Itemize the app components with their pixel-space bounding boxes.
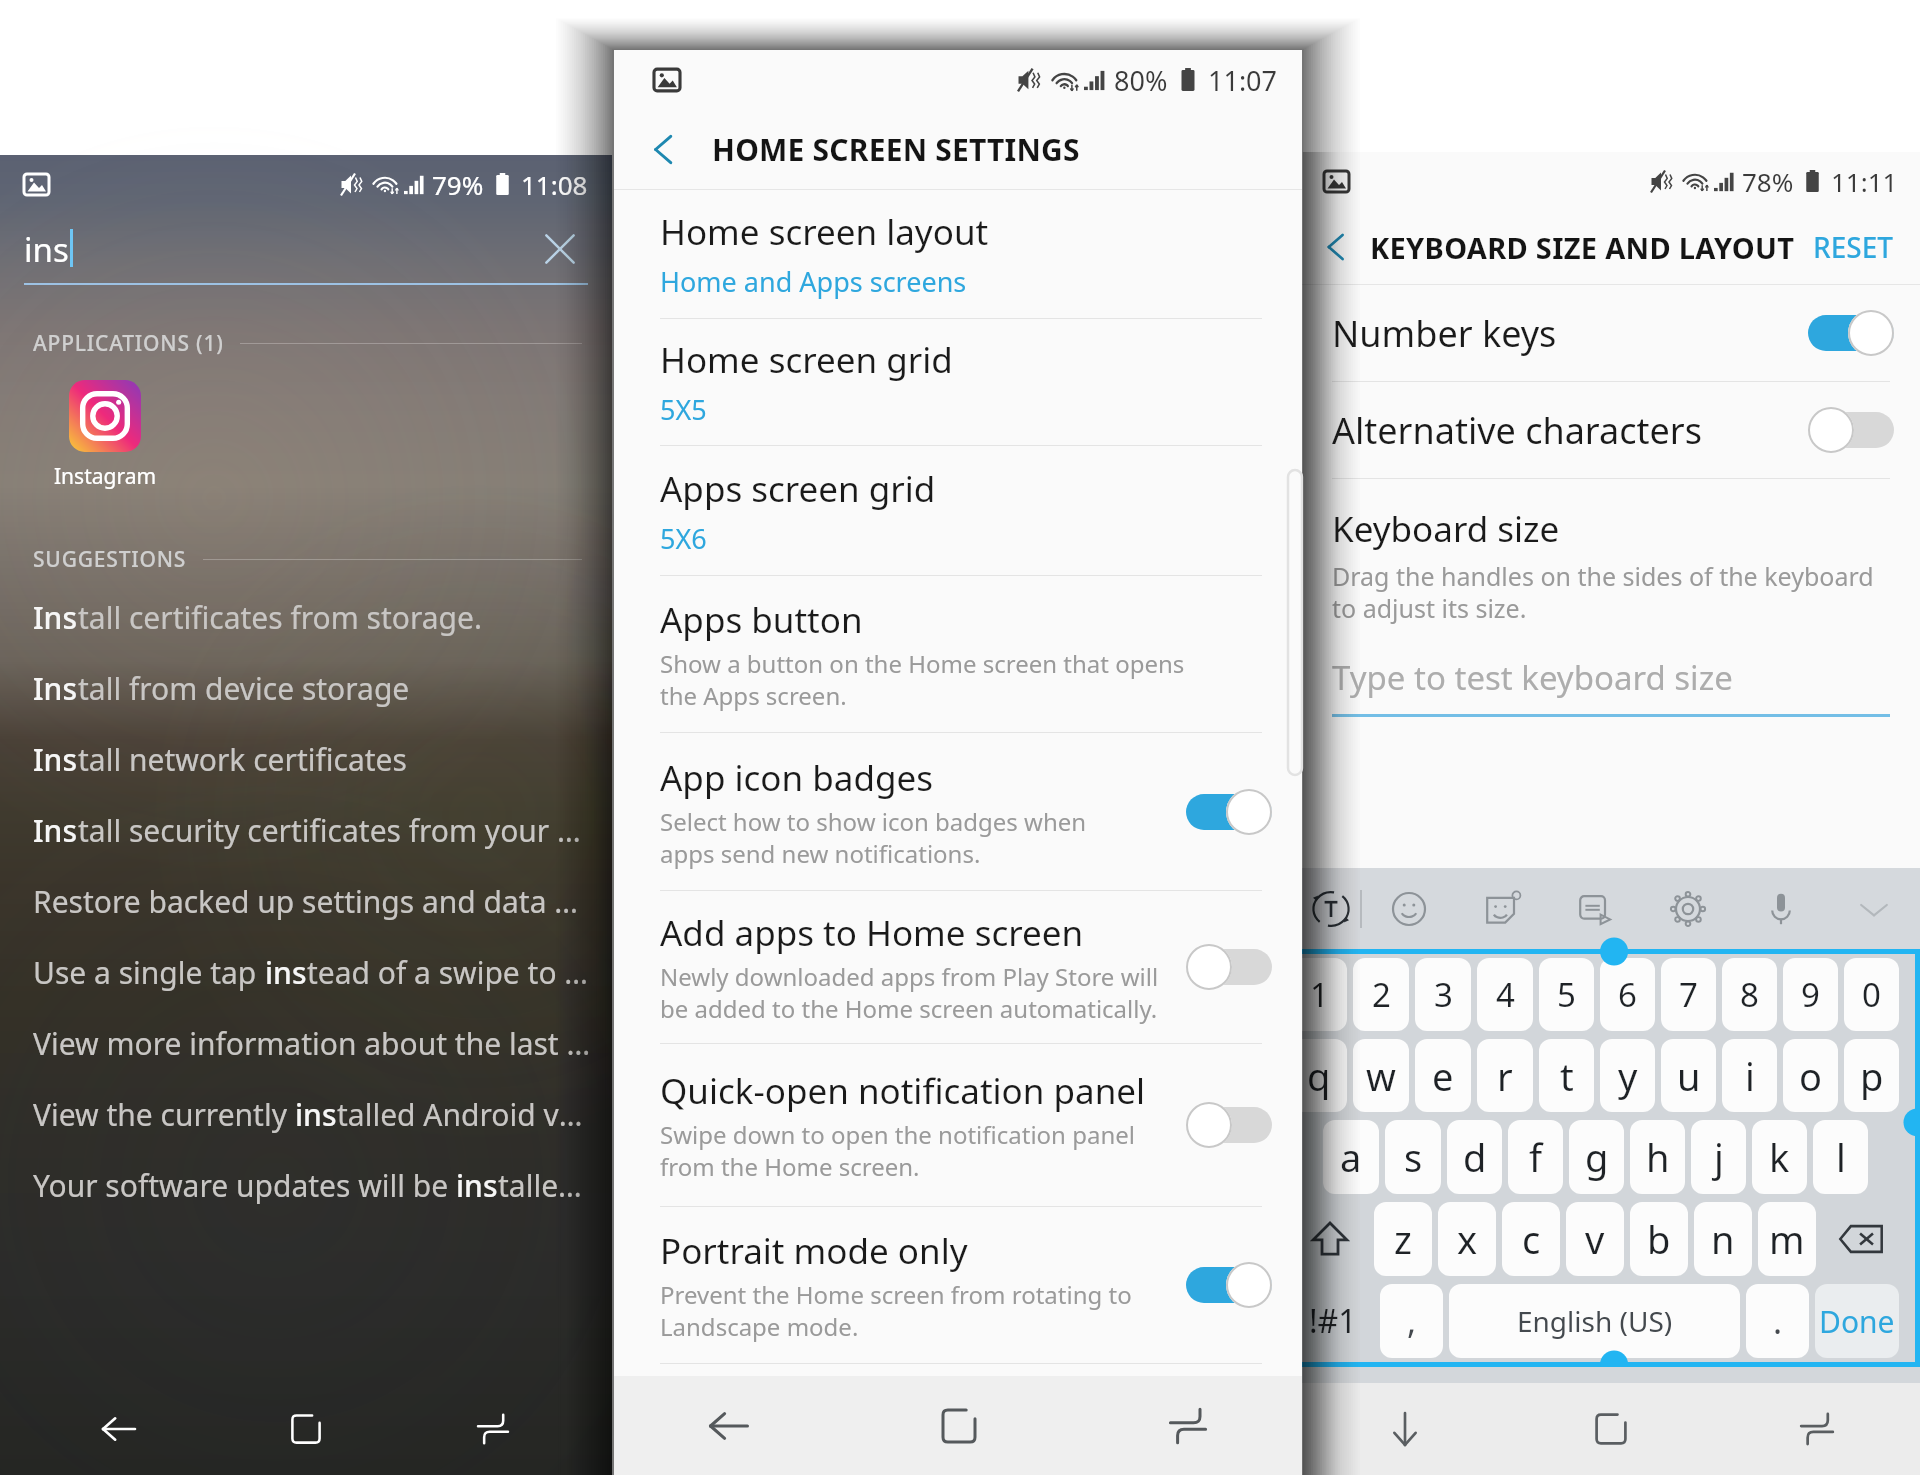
button[interactable]: Apps screen grid [614, 446, 1302, 575]
button[interactable]: View the currently [0, 1079, 612, 1150]
button[interactable]: Your software updates will be [0, 1150, 612, 1221]
button[interactable]: Toggle on [1186, 1262, 1272, 1308]
button[interactable]: t [1539, 1039, 1594, 1112]
button[interactable]: 7 [1661, 958, 1716, 1031]
button[interactable]: Back [614, 110, 712, 189]
button[interactable]: Toggle on [1808, 310, 1894, 356]
button[interactable]: Number keys [1302, 285, 1920, 381]
button[interactable]: 4 [1477, 958, 1533, 1031]
button[interactable]: 1 [1291, 958, 1347, 1031]
button[interactable]: z [1374, 1202, 1432, 1276]
button[interactable]: x [1438, 1202, 1496, 1276]
button[interactable]: Ins [0, 724, 612, 795]
button[interactable]: h [1630, 1120, 1685, 1194]
button[interactable]: Back [614, 1376, 844, 1475]
button[interactable]: 6 [1600, 958, 1655, 1031]
button[interactable]: Translate [1302, 868, 1360, 949]
button[interactable]: GIF [1548, 868, 1641, 949]
button[interactable]: a [1323, 1120, 1379, 1194]
button[interactable]: Shift [1291, 1202, 1368, 1276]
button[interactable]: Home [212, 1383, 399, 1475]
staticText: Alternative characters [1332, 406, 1702, 455]
button[interactable]: Clear search [532, 221, 588, 277]
button[interactable]: Backspace [1822, 1202, 1899, 1276]
button[interactable]: Back [26, 1383, 212, 1475]
button[interactable]: 3 [1415, 958, 1471, 1031]
button[interactable]: Add apps to Home screen [614, 891, 1302, 1043]
button[interactable]: !#1 [1291, 1284, 1374, 1358]
button[interactable]: Use a single tap [0, 937, 612, 1008]
button[interactable]: y [1600, 1039, 1655, 1112]
button[interactable]: o [1783, 1039, 1838, 1112]
staticText: n [1711, 1213, 1735, 1265]
button[interactable]: v [1566, 1202, 1624, 1276]
button[interactable]: Restore backed up settings and data au… [0, 866, 612, 937]
button[interactable]: m [1758, 1202, 1816, 1276]
button[interactable]: Toggle off [1808, 407, 1894, 453]
button[interactable]: View more information about the last u… [0, 1008, 612, 1079]
button[interactable]: Toggle off [1186, 1102, 1272, 1148]
button[interactable]: Back [1302, 210, 1370, 284]
button[interactable]: l [1813, 1120, 1868, 1194]
button[interactable]: g [1569, 1120, 1624, 1194]
button[interactable]: w [1353, 1039, 1409, 1112]
button[interactable]: Recents [1073, 1376, 1302, 1475]
button[interactable]: RESET [1807, 220, 1900, 274]
staticText: y [1618, 1050, 1638, 1102]
button[interactable]: s [1385, 1120, 1441, 1194]
button[interactable]: Emoji [1362, 868, 1455, 949]
staticText: View the currently [33, 1094, 295, 1135]
button[interactable]: 8 [1722, 958, 1777, 1031]
button[interactable]: Toggle off [1186, 944, 1272, 990]
button[interactable]: Done [1815, 1284, 1899, 1358]
button[interactable]: Home [844, 1376, 1073, 1475]
button[interactable]: r [1477, 1039, 1533, 1112]
staticText: l [1836, 1131, 1846, 1183]
button[interactable]: k [1752, 1120, 1807, 1194]
button[interactable]: Collapse [1827, 868, 1920, 949]
button[interactable]: i [1722, 1039, 1777, 1112]
staticText: Ins [33, 810, 78, 851]
staticText: u [1677, 1050, 1701, 1102]
button[interactable]: Home screen layout [614, 190, 1302, 318]
button[interactable]: Ins [0, 653, 612, 724]
button[interactable]: English (US) [1449, 1284, 1740, 1358]
button[interactable]: p [1844, 1039, 1899, 1112]
button[interactable]: u [1661, 1039, 1716, 1112]
button[interactable]: j [1691, 1120, 1746, 1194]
staticText: RESET [1813, 228, 1894, 266]
button[interactable]: Apps button [614, 576, 1302, 732]
staticText: Number keys [1332, 309, 1557, 358]
button[interactable]: Home [1508, 1383, 1714, 1475]
button[interactable]: f [1508, 1120, 1563, 1194]
button[interactable]: Toggle on [1186, 789, 1272, 835]
button[interactable]: Instagram [69, 380, 141, 452]
button[interactable]: Alternative characters [1302, 382, 1920, 478]
button[interactable]: d [1447, 1120, 1502, 1194]
button[interactable]: q [1291, 1039, 1347, 1112]
button[interactable]: Voice [1734, 868, 1827, 949]
button[interactable]: , [1380, 1284, 1443, 1358]
button[interactable]: . [1746, 1284, 1809, 1358]
button[interactable]: Quick-open notification panel [614, 1044, 1302, 1206]
button[interactable]: Recents [399, 1383, 586, 1475]
button[interactable]: b [1630, 1202, 1688, 1276]
button[interactable]: 9 [1783, 958, 1838, 1031]
button[interactable]: Sticker [1455, 868, 1548, 949]
staticText: z [1394, 1213, 1412, 1265]
button[interactable]: 5 [1539, 958, 1594, 1031]
button[interactable]: Home screen grid [614, 319, 1302, 445]
button[interactable]: Ins [0, 582, 612, 653]
button[interactable]: Ins [0, 795, 612, 866]
button[interactable]: Settings [1641, 868, 1734, 949]
button[interactable]: n [1694, 1202, 1752, 1276]
button[interactable]: c [1502, 1202, 1560, 1276]
button[interactable]: App icon badges [614, 733, 1302, 890]
button[interactable]: Portrait mode only [614, 1207, 1302, 1363]
button[interactable]: 2 [1353, 958, 1409, 1031]
button[interactable]: Hide keyboard [1302, 1383, 1508, 1475]
button[interactable]: Recents [1714, 1383, 1920, 1475]
button[interactable]: e [1415, 1039, 1471, 1112]
button[interactable]: 0 [1844, 958, 1899, 1031]
staticText: Ins [33, 739, 78, 780]
